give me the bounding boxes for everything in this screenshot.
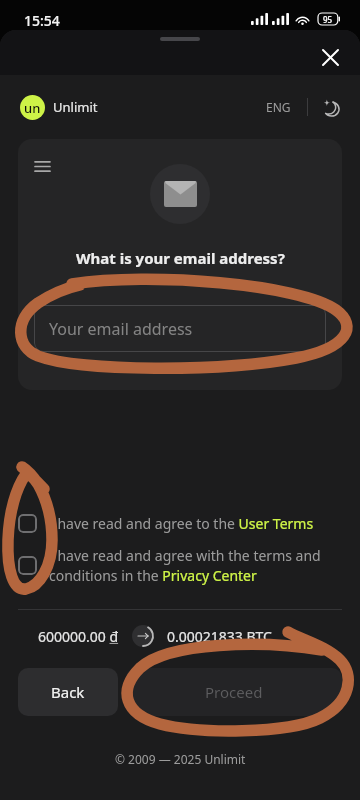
staticText: 95 xyxy=(323,14,333,25)
button[interactable]: Your email address xyxy=(34,305,326,352)
staticText: I have read and agree to the User Terms xyxy=(49,514,314,533)
button[interactable]: Proceed xyxy=(126,668,342,716)
button[interactable]: Close xyxy=(315,42,345,72)
button[interactable]: Menu xyxy=(28,152,56,180)
staticText: ENG xyxy=(266,99,291,115)
staticText: un xyxy=(24,99,41,117)
staticText: 15:54 xyxy=(24,11,60,30)
staticText: What is your email address? xyxy=(76,248,285,268)
button[interactable]: Back xyxy=(18,668,118,716)
button[interactable]: I have read and agree to the User Terms xyxy=(18,514,342,533)
staticText: Back xyxy=(51,682,85,702)
staticText: I have read and agree with the terms and… xyxy=(49,546,342,585)
button[interactable]: Dark mode xyxy=(318,94,344,120)
staticText: 600000.00 đ xyxy=(38,627,119,646)
staticText: © 2009 — 2025 Unlimit xyxy=(115,751,246,767)
staticText: Proceed xyxy=(205,682,263,702)
staticText: Unlimit xyxy=(53,98,98,116)
staticText: 0.00021833 BTC xyxy=(167,627,272,646)
staticText: Your email address xyxy=(49,318,193,340)
button[interactable]: I have read and agree with the terms and… xyxy=(18,546,342,585)
button[interactable]: ENG xyxy=(260,93,297,121)
